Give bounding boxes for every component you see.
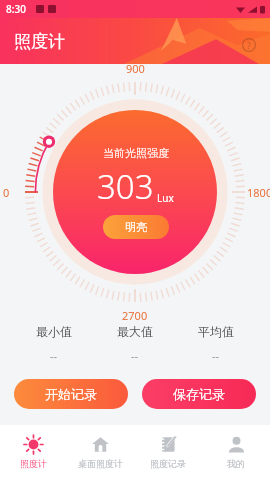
staticText: 900 [126, 61, 145, 76]
staticText: 最小值 [36, 324, 72, 339]
staticText: -- [212, 348, 220, 363]
staticText: -- [131, 348, 139, 363]
staticText: 303 [97, 164, 154, 209]
button[interactable]: 桌面照度计 [67, 425, 134, 479]
button[interactable]: Help [236, 32, 262, 58]
staticText: 8:30 [6, 2, 26, 16]
button[interactable]: 明亮 [103, 215, 169, 239]
staticText: 我的 [227, 458, 245, 469]
staticText: 桌面照度计 [78, 458, 123, 469]
button[interactable]: 我的 [202, 425, 270, 479]
staticText: 开始记录 [45, 386, 97, 402]
button[interactable]: 照度记录 [134, 425, 202, 479]
staticText: 当前光照强度 [103, 146, 169, 160]
staticText: 照度计 [14, 31, 65, 52]
staticText: 最大值 [117, 324, 153, 339]
staticText: 保存记录 [173, 386, 225, 402]
button[interactable]: 保存记录 [142, 379, 256, 409]
staticText: -- [50, 348, 58, 363]
staticText: 照度计 [20, 458, 47, 469]
staticText: 0 [3, 185, 10, 200]
button[interactable]: 照度计 [0, 425, 67, 479]
staticText: 平均值 [198, 324, 234, 339]
staticText: 1800 [247, 185, 270, 200]
staticText: ? [247, 39, 251, 51]
staticText: 明亮 [125, 220, 147, 234]
staticText: 2700 [122, 308, 148, 323]
button[interactable]: 开始记录 [14, 379, 128, 409]
staticText: 照度记录 [150, 458, 186, 469]
staticText: Lux [157, 191, 174, 205]
